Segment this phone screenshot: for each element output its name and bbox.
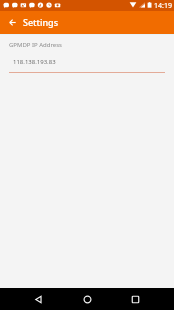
staticText: 118.138.193.83 <box>13 58 56 66</box>
button[interactable]: Home <box>73 288 102 310</box>
button[interactable]: Navigate up <box>3 13 22 32</box>
staticText: Settings <box>23 16 59 28</box>
button[interactable]: Back <box>24 288 53 310</box>
staticText: 14:19 <box>154 1 172 11</box>
button[interactable]: Recent apps <box>121 288 150 310</box>
staticText: GPMDP IP Address <box>9 41 62 49</box>
button[interactable]: GPMDP IP Address text field <box>0 34 174 75</box>
